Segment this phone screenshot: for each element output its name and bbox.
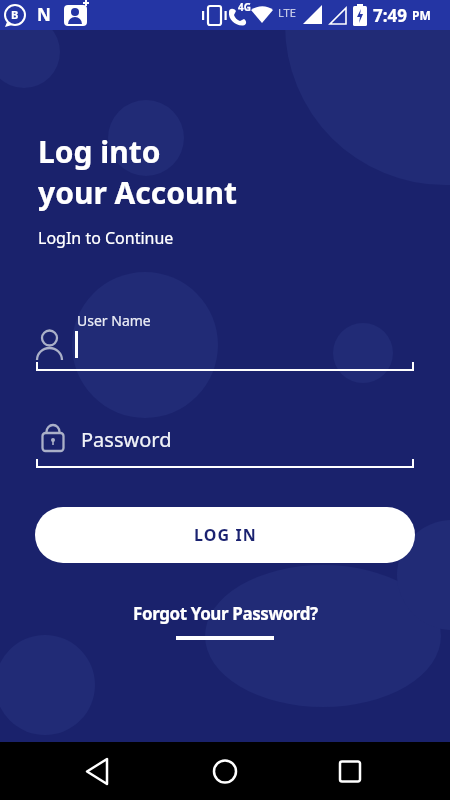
staticText: LogIn to Continue: [38, 227, 174, 249]
staticText: LOG IN: [194, 524, 257, 546]
staticText: Password: [81, 426, 172, 453]
staticText: User Name: [77, 311, 151, 330]
staticText: Log into: [38, 131, 161, 172]
button[interactable]: User Name: [30, 300, 420, 380]
button[interactable]: LOG IN: [35, 507, 415, 563]
staticText: LTE: [278, 5, 296, 20]
staticText: PM: [412, 7, 431, 23]
staticText: 4G: [238, 0, 251, 14]
staticText: 7:49: [373, 4, 412, 27]
button[interactable]: Password: [30, 410, 420, 472]
staticText: Forgot Your Password?: [133, 602, 318, 625]
button[interactable]: [150, 742, 300, 800]
staticText: your Account: [38, 172, 238, 213]
button[interactable]: [300, 742, 450, 800]
staticText: B: [11, 7, 19, 22]
button[interactable]: [0, 742, 150, 800]
button[interactable]: Forgot Your Password?: [0, 598, 450, 644]
staticText: N: [37, 3, 51, 26]
